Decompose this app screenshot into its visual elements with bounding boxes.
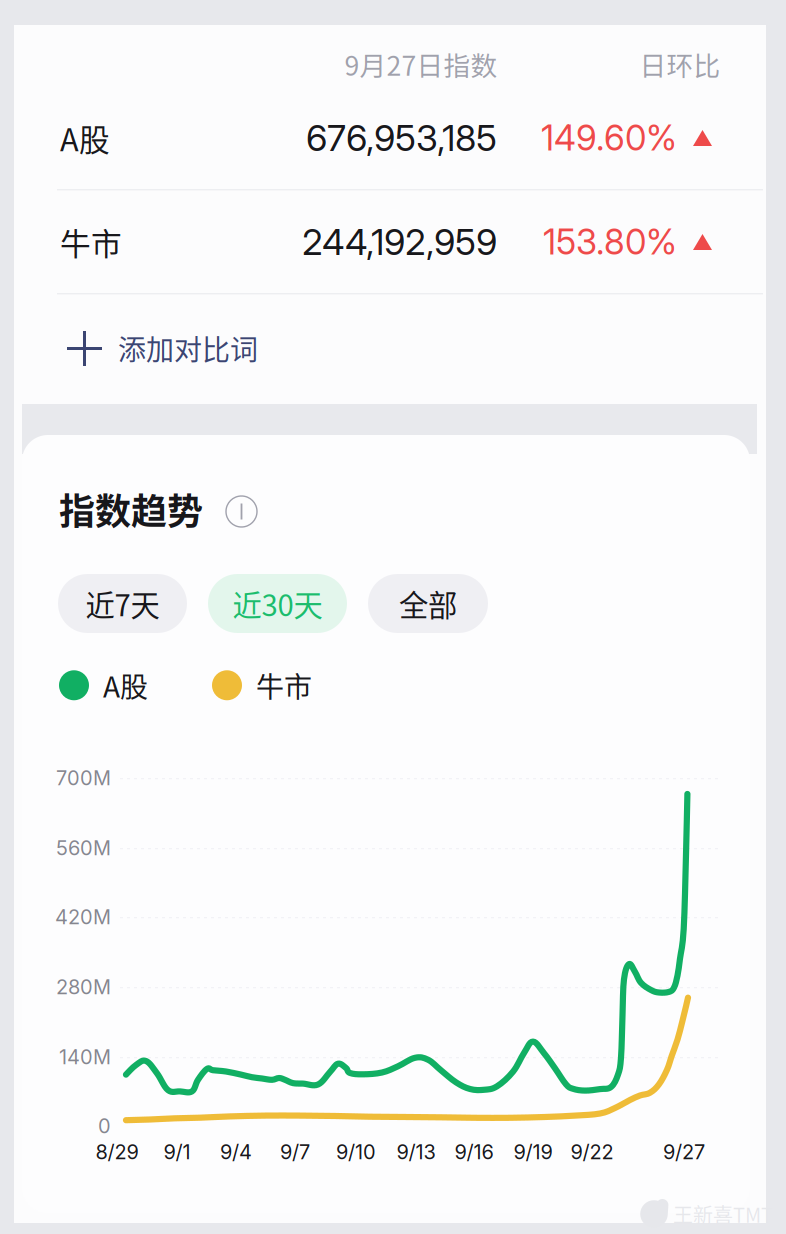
staticText: 700M [56,766,111,790]
staticText: 牛市 [256,665,312,705]
staticText: 676,953,185 [306,116,497,160]
staticText: 0 [98,1114,111,1138]
staticText: 9/10 [336,1140,376,1164]
staticText: 244,192,959 [302,220,497,264]
staticText: 280M [56,975,111,999]
staticText: 9/19 [513,1140,552,1164]
staticText: A股 [60,116,110,160]
staticText: 9/16 [454,1140,493,1164]
staticText: 9/13 [396,1140,435,1164]
staticText: 9月27日指数 [344,45,497,83]
staticText: 日环比 [639,45,720,83]
staticText: A股 [103,665,148,705]
staticText: 420M [55,905,111,929]
staticText: 9/27 [663,1140,705,1164]
staticText: 牛市 [60,220,122,264]
staticText: 添加对比词 [118,328,258,368]
staticText: 指数趋势 [59,483,203,535]
staticText: 149.60% [541,117,677,159]
staticText: 153.80% [543,221,677,263]
staticText: 9/7 [280,1140,310,1164]
staticText: 近7天 [85,582,159,625]
button[interactable]: 近7天 [58,574,187,633]
staticText: 8/29 [95,1140,138,1164]
button[interactable]: 添加对比词 [67,315,317,381]
button[interactable]: 近30天 [208,574,347,633]
staticText: 560M [56,836,111,860]
button[interactable]: 全部 [368,574,488,633]
staticText: 全部 [399,582,457,625]
staticText: 140M [59,1045,111,1069]
staticText: 9/4 [220,1140,252,1164]
staticText: 9/22 [570,1140,613,1164]
staticText: 王新喜TMT [673,1199,773,1228]
staticText: 近30天 [232,582,322,625]
staticText: 9/1 [163,1140,190,1164]
